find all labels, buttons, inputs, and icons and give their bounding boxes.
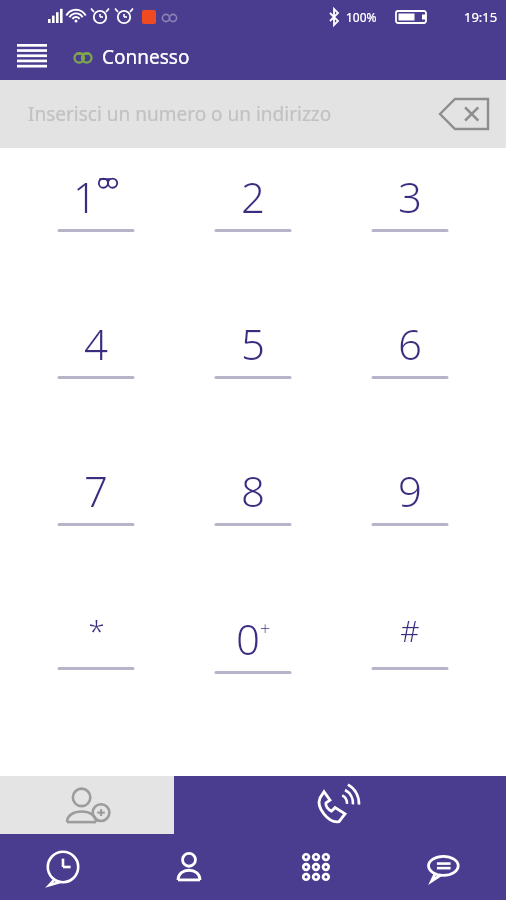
staticText: 0 — [236, 610, 260, 667]
button[interactable]: Recents — [0, 834, 126, 900]
staticText: 19:15 — [464, 8, 498, 26]
staticText: 100% — [346, 9, 377, 25]
button[interactable]: 3 — [331, 162, 488, 309]
button[interactable]: Backspace — [436, 92, 492, 136]
button[interactable]: 7 — [18, 456, 174, 604]
button[interactable]: Add contact — [0, 776, 174, 834]
button[interactable]: 2 — [174, 162, 331, 309]
staticText: 2 — [241, 168, 265, 225]
staticText: 5 — [241, 315, 265, 372]
button[interactable]: 5 — [174, 309, 331, 456]
button[interactable]: Menu — [10, 35, 54, 79]
staticText: Connesso — [102, 44, 190, 70]
staticText: * — [88, 610, 105, 651]
button[interactable]: Messages — [379, 834, 506, 900]
staticText: 7 — [84, 462, 108, 519]
button[interactable]: # — [331, 604, 488, 752]
staticText: Inserisci un numero o un indirizzo — [28, 101, 332, 127]
button[interactable]: 9 — [331, 456, 488, 604]
staticText: # — [400, 610, 420, 651]
staticText: 3 — [398, 168, 422, 225]
staticText: 8 — [241, 462, 265, 519]
staticText: 1 — [73, 168, 97, 225]
staticText: + — [260, 616, 271, 641]
button[interactable]: 6 — [331, 309, 488, 456]
button[interactable]: Keypad — [252, 834, 379, 900]
button[interactable]: * — [18, 604, 174, 752]
staticText: 6 — [398, 315, 422, 372]
button[interactable]: 1 — [18, 162, 174, 309]
button[interactable]: 4 — [18, 309, 174, 456]
button[interactable]: Call — [174, 776, 506, 834]
staticText: 4 — [84, 315, 108, 372]
staticText: 9 — [398, 462, 422, 519]
button[interactable]: Contacts — [126, 834, 252, 900]
button[interactable]: 8 — [174, 456, 331, 604]
button[interactable]: 0 — [174, 604, 331, 752]
